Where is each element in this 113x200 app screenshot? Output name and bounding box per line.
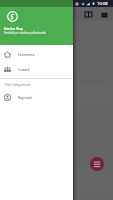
button[interactable]: List view <box>100 10 109 19</box>
button[interactable]: Gel Top <box>58 23 111 107</box>
staticText: Estetica Shop <box>4 27 24 31</box>
button[interactable]: Gel Top <box>58 197 111 198</box>
button[interactable]: Contatti <box>0 62 73 77</box>
staticText: 10:08 <box>97 1 108 7</box>
button[interactable]: Ecommerce <box>0 47 73 62</box>
staticText: Gel Top <box>5 85 17 89</box>
staticText: Registrati <box>18 96 32 100</box>
staticText: Testi Collegamento <box>5 83 31 87</box>
button[interactable]: Shopping cart <box>90 157 104 171</box>
button[interactable]: Gel Top <box>58 110 111 194</box>
staticText: Prodotti per estetica professionale <box>4 31 46 35</box>
button[interactable]: Grid view <box>84 10 93 19</box>
button[interactable]: Registrati <box>0 90 73 105</box>
staticText: Ecommerce <box>18 53 35 57</box>
staticText: Contatti <box>18 68 30 72</box>
button[interactable]: Open navigation menu <box>5 10 14 19</box>
button[interactable]: Gel Top <box>2 23 55 107</box>
